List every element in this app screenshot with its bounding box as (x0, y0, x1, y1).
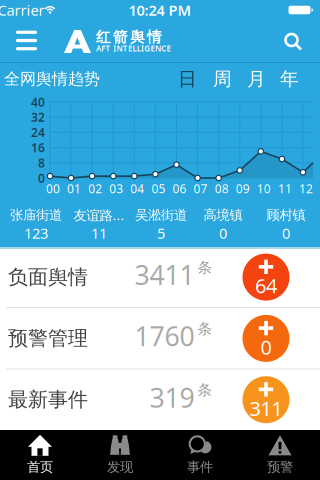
staticText: 条 (197, 381, 212, 399)
button[interactable]: 负面舆情 (0, 246, 320, 308)
button[interactable]: 月 (241, 61, 272, 96)
staticText: 07 (194, 180, 208, 196)
staticText: 01 (67, 180, 81, 196)
staticText: 10:24 PM (128, 0, 191, 20)
staticText: 条 (197, 320, 212, 338)
staticText: 08 (215, 180, 229, 196)
staticText: 月 (247, 67, 266, 90)
staticText: 04 (130, 180, 144, 196)
staticText: Carrier (0, 0, 44, 20)
staticText: 全网舆情趋势 (4, 69, 100, 89)
button[interactable]: 预警 (240, 430, 320, 480)
staticText: 03 (109, 180, 123, 196)
button[interactable]: Menu (8, 23, 45, 58)
staticText: 年 (280, 67, 299, 90)
staticText: 1760 (134, 318, 194, 354)
button[interactable]: 预警管理 (0, 308, 320, 369)
staticText: 06 (172, 180, 186, 196)
staticText: 周 (213, 67, 232, 90)
button[interactable]: 年 (274, 61, 305, 96)
staticText: 0 (282, 223, 290, 243)
staticText: 最新事件 (8, 387, 88, 412)
staticText: 5 (157, 223, 165, 243)
button[interactable]: Search (276, 24, 310, 58)
staticText: 11 (278, 180, 292, 196)
staticText: 11 (91, 223, 107, 243)
staticText: 事件 (187, 459, 213, 475)
staticText: 311 (249, 395, 282, 421)
staticText: 24 (31, 124, 45, 140)
staticText: 条 (197, 258, 212, 276)
staticText: 10 (257, 180, 271, 196)
staticText: 32 (31, 109, 45, 125)
staticText: 40 (31, 94, 45, 110)
staticText: 319 (149, 380, 194, 415)
staticText: 8 (38, 155, 45, 171)
staticText: 00 (46, 180, 60, 196)
staticText: 05 (151, 180, 165, 196)
button[interactable]: 最新事件 (0, 369, 320, 430)
staticText: 发现 (107, 459, 133, 475)
staticText: 0 (219, 223, 227, 243)
staticText: 吴淞街道 (135, 207, 187, 223)
button[interactable]: 发现 (80, 430, 160, 480)
button[interactable]: 首页 (0, 430, 80, 480)
staticText: 09 (236, 180, 250, 196)
staticText: 首页 (27, 459, 53, 475)
staticText: 高境镇 (203, 207, 242, 223)
staticText: 123 (24, 223, 48, 243)
staticText: 12 (299, 180, 313, 196)
staticText: 日 (178, 67, 197, 90)
staticText: 张庙街道 (10, 207, 62, 223)
staticText: 0 (38, 170, 45, 186)
staticText: 16 (31, 140, 45, 155)
button[interactable]: 日 (172, 61, 203, 96)
staticText: 顾村镇 (266, 207, 305, 223)
staticText: 友谊路... (73, 206, 124, 224)
staticText: 预警 (267, 459, 293, 475)
staticText: 02 (88, 180, 102, 196)
button[interactable]: 周 (207, 61, 238, 96)
staticText: 预警管理 (8, 326, 88, 351)
button[interactable]: 事件 (160, 430, 240, 480)
staticText: 负面舆情 (8, 265, 88, 289)
staticText: AFT INTELLIGENCE (96, 43, 170, 54)
staticText: 红箭舆情 (96, 28, 162, 46)
staticText: 0 (260, 334, 271, 360)
staticText: 3411 (134, 257, 194, 292)
staticText: 64 (255, 272, 277, 299)
